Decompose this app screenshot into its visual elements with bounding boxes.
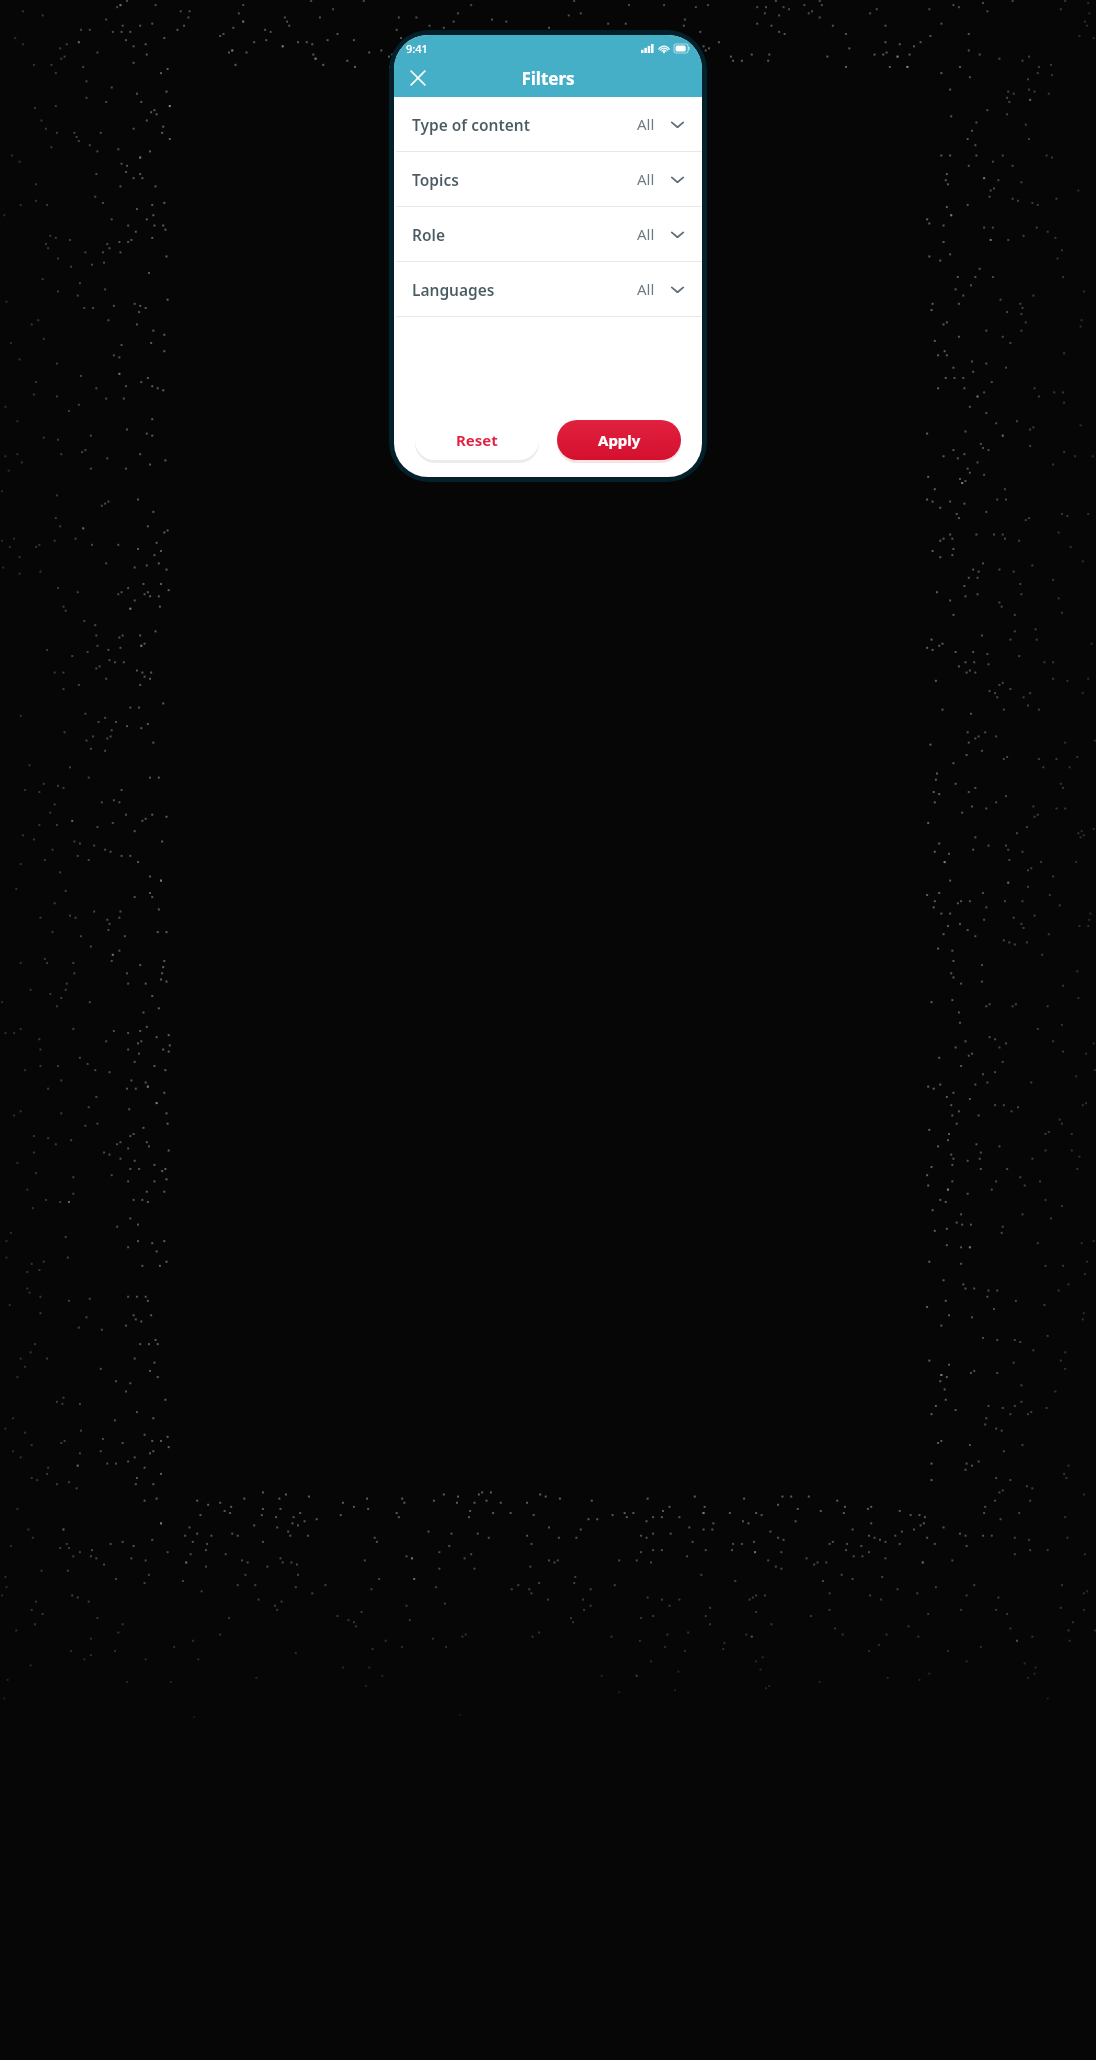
staticText: Role bbox=[412, 224, 445, 245]
staticText: Filters bbox=[394, 67, 702, 90]
staticText: Apply bbox=[598, 430, 641, 450]
button[interactable]: Apply bbox=[557, 420, 681, 460]
staticText: 9:41 bbox=[406, 41, 428, 56]
staticText: All bbox=[637, 169, 655, 189]
staticText: All bbox=[637, 224, 655, 244]
button[interactable]: Languages bbox=[394, 262, 702, 316]
staticText: Type of content bbox=[412, 114, 530, 135]
staticText: All bbox=[637, 114, 655, 134]
staticText: Languages bbox=[412, 279, 495, 300]
staticText: All bbox=[637, 279, 655, 299]
button[interactable]: Reset bbox=[415, 420, 539, 460]
button[interactable]: Type of content bbox=[394, 97, 702, 151]
staticText: Topics bbox=[412, 169, 459, 190]
button[interactable]: Role bbox=[394, 207, 702, 261]
button[interactable]: Topics bbox=[394, 152, 702, 206]
staticText: Reset bbox=[456, 430, 498, 450]
button[interactable]: Close bbox=[400, 60, 436, 96]
